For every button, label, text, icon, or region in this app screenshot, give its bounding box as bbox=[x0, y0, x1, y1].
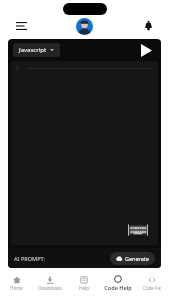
staticText: 1 bbox=[16, 65, 19, 72]
staticText: Code Fix bbox=[143, 285, 161, 291]
button[interactable]: Help bbox=[67, 272, 101, 294]
staticText: Javascript bbox=[19, 46, 47, 54]
button[interactable]: Keyboard bbox=[128, 223, 148, 237]
staticText: Generate bbox=[125, 255, 149, 262]
button[interactable]: Code Fix bbox=[135, 272, 169, 294]
staticText: Downloads bbox=[38, 285, 62, 291]
staticText: AI PROMPT: bbox=[14, 255, 46, 262]
button[interactable]: Profile bbox=[76, 18, 93, 35]
button[interactable]: Run bbox=[136, 40, 156, 60]
staticText: Home bbox=[10, 285, 23, 291]
button[interactable]: Code Help bbox=[101, 272, 135, 294]
button[interactable]: Menu bbox=[13, 18, 29, 34]
button[interactable]: 1 bbox=[11, 61, 158, 245]
button[interactable]: Generate bbox=[110, 252, 155, 265]
button[interactable]: Home bbox=[0, 272, 33, 294]
button[interactable]: Javascript bbox=[13, 43, 60, 57]
button[interactable]: Downloads bbox=[33, 272, 67, 294]
staticText: Help bbox=[79, 285, 89, 291]
button[interactable]: Notifications bbox=[140, 18, 156, 34]
staticText: Code Help bbox=[104, 284, 132, 291]
